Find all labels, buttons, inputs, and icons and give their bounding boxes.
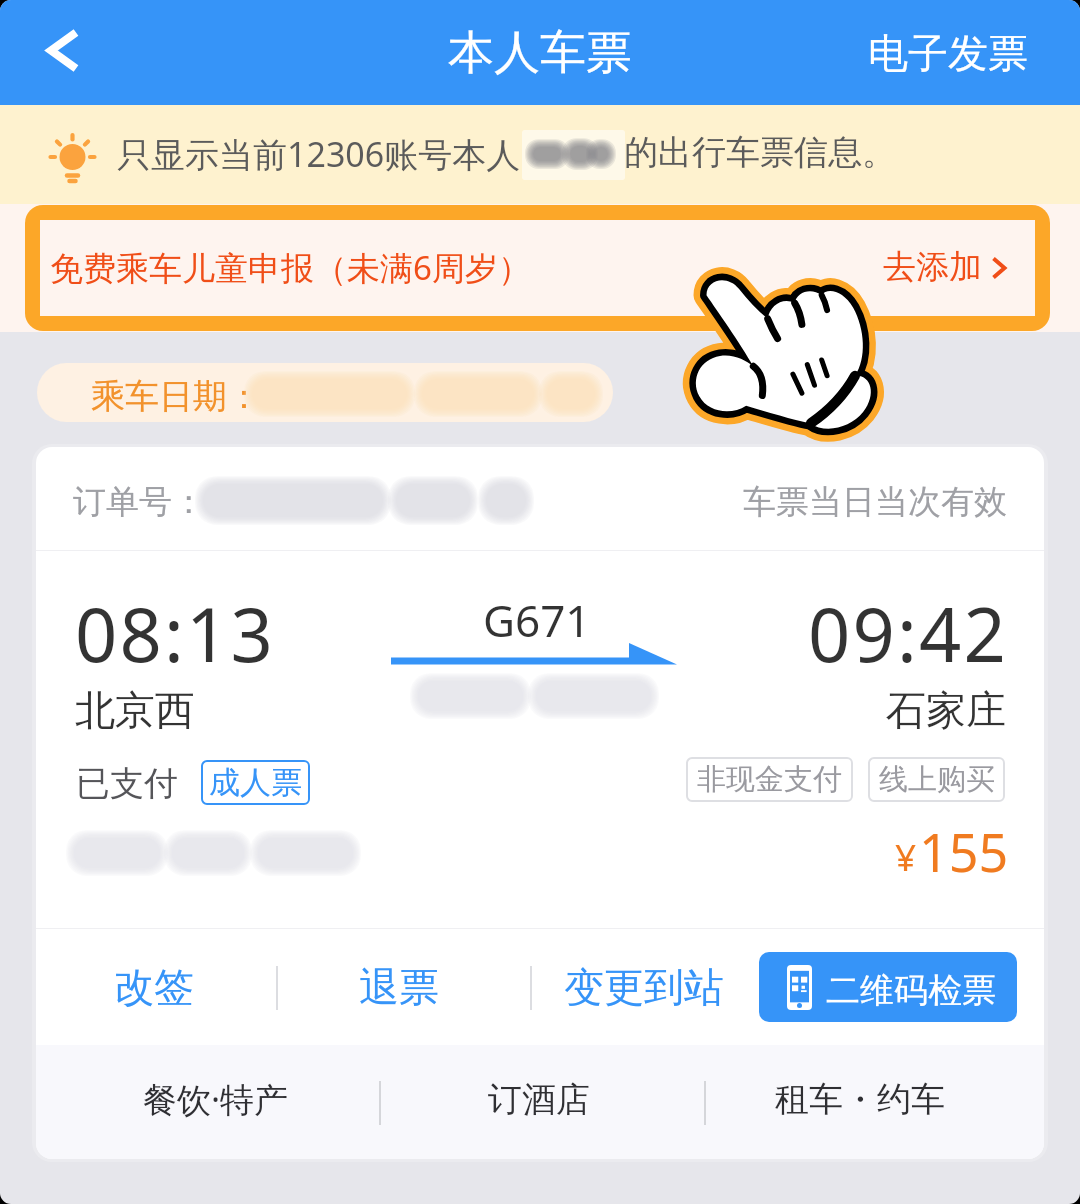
button[interactable]: 成人票	[201, 760, 310, 805]
staticText: 订单号：	[73, 481, 205, 523]
button[interactable]: 免费乘车儿童申报（未满6周岁）	[40, 220, 1035, 316]
staticText: 二维码检票	[826, 969, 996, 1012]
button[interactable]: 餐饮·特产	[108, 1042, 324, 1156]
staticText: 餐饮·特产	[143, 1076, 289, 1122]
staticText: 本人车票	[448, 24, 632, 82]
staticText: 只显示当前12306账号本人	[117, 131, 521, 177]
staticText: 的出行车票信息。	[624, 131, 896, 174]
staticText: 155	[919, 816, 1009, 887]
button[interactable]: 二维码检票	[759, 952, 1017, 1022]
staticText: 乘车日期：	[91, 375, 261, 418]
staticText: 已支付	[76, 762, 178, 805]
button[interactable]: 租车・约车	[752, 1042, 968, 1156]
button[interactable]: 退票	[358, 960, 440, 1014]
staticText: G671	[483, 590, 591, 650]
staticText: 08:13	[75, 583, 276, 684]
staticText: 线上购买	[879, 761, 995, 798]
staticText: 电子发票	[868, 28, 1028, 78]
staticText: 变更到站	[564, 962, 724, 1012]
staticText: 石家庄	[886, 685, 1006, 735]
button[interactable]: 电子发票	[838, 0, 1080, 105]
staticText: 去添加	[883, 246, 982, 288]
staticText: 租车・约车	[775, 1078, 945, 1121]
staticText: 订酒店	[488, 1078, 590, 1121]
button[interactable]: 改签	[113, 960, 195, 1014]
button[interactable]: 订酒店	[431, 1042, 647, 1156]
staticText: 退票	[359, 962, 439, 1012]
staticText: ¥	[895, 831, 917, 881]
button[interactable]: Back	[0, 0, 120, 105]
staticText: 09:42	[808, 583, 1009, 684]
button[interactable]: 变更到站	[562, 960, 726, 1014]
staticText: 北京西	[75, 685, 195, 735]
staticText: 改签	[114, 962, 194, 1012]
button[interactable]: 乘车日期：	[37, 363, 613, 422]
staticText: 免费乘车儿童申报（未满6周岁）	[50, 245, 531, 290]
staticText: 成人票	[209, 763, 302, 802]
staticText: 非现金支付	[697, 761, 842, 798]
staticText: 车票当日当次有效	[743, 481, 1007, 523]
